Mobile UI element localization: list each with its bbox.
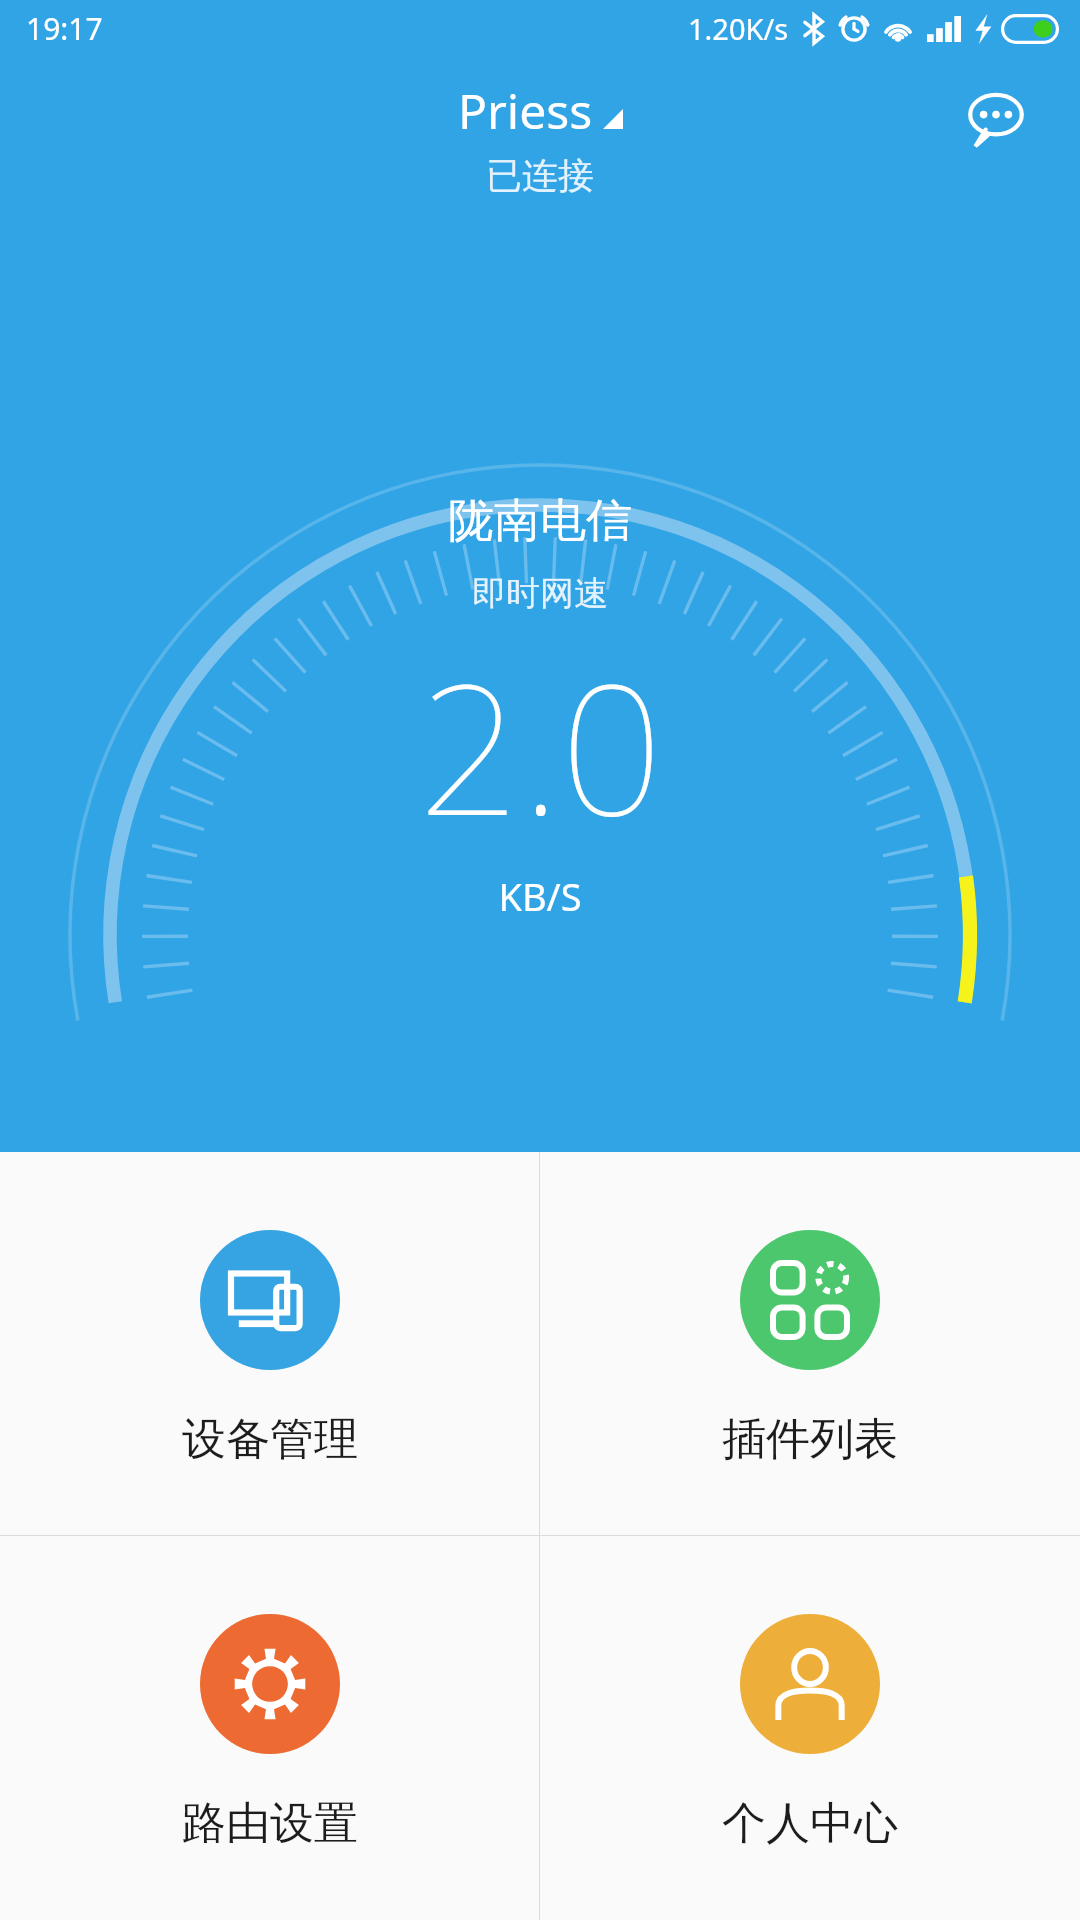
button[interactable]: Messages xyxy=(954,78,1038,162)
staticText: 1.20K/s xyxy=(688,9,789,48)
staticText: 即时网速 xyxy=(472,572,608,615)
staticText: Priess xyxy=(458,78,593,143)
staticText: 陇南电信 xyxy=(448,492,632,550)
staticText: 路由设置 xyxy=(182,1796,358,1851)
staticText: 插件列表 xyxy=(722,1412,898,1467)
button[interactable]: 个人中心 xyxy=(540,1536,1080,1920)
staticText: KB/S xyxy=(498,870,582,922)
staticText: 已连接 xyxy=(486,153,594,198)
staticText: 2.0 xyxy=(418,623,663,868)
staticText: 个人中心 xyxy=(722,1796,898,1851)
staticText: 设备管理 xyxy=(182,1412,358,1467)
button[interactable]: 路由设置 xyxy=(0,1536,539,1920)
button[interactable]: 设备管理 xyxy=(0,1152,539,1535)
button[interactable]: 插件列表 xyxy=(540,1152,1080,1535)
staticText: 19:17 xyxy=(26,8,103,49)
